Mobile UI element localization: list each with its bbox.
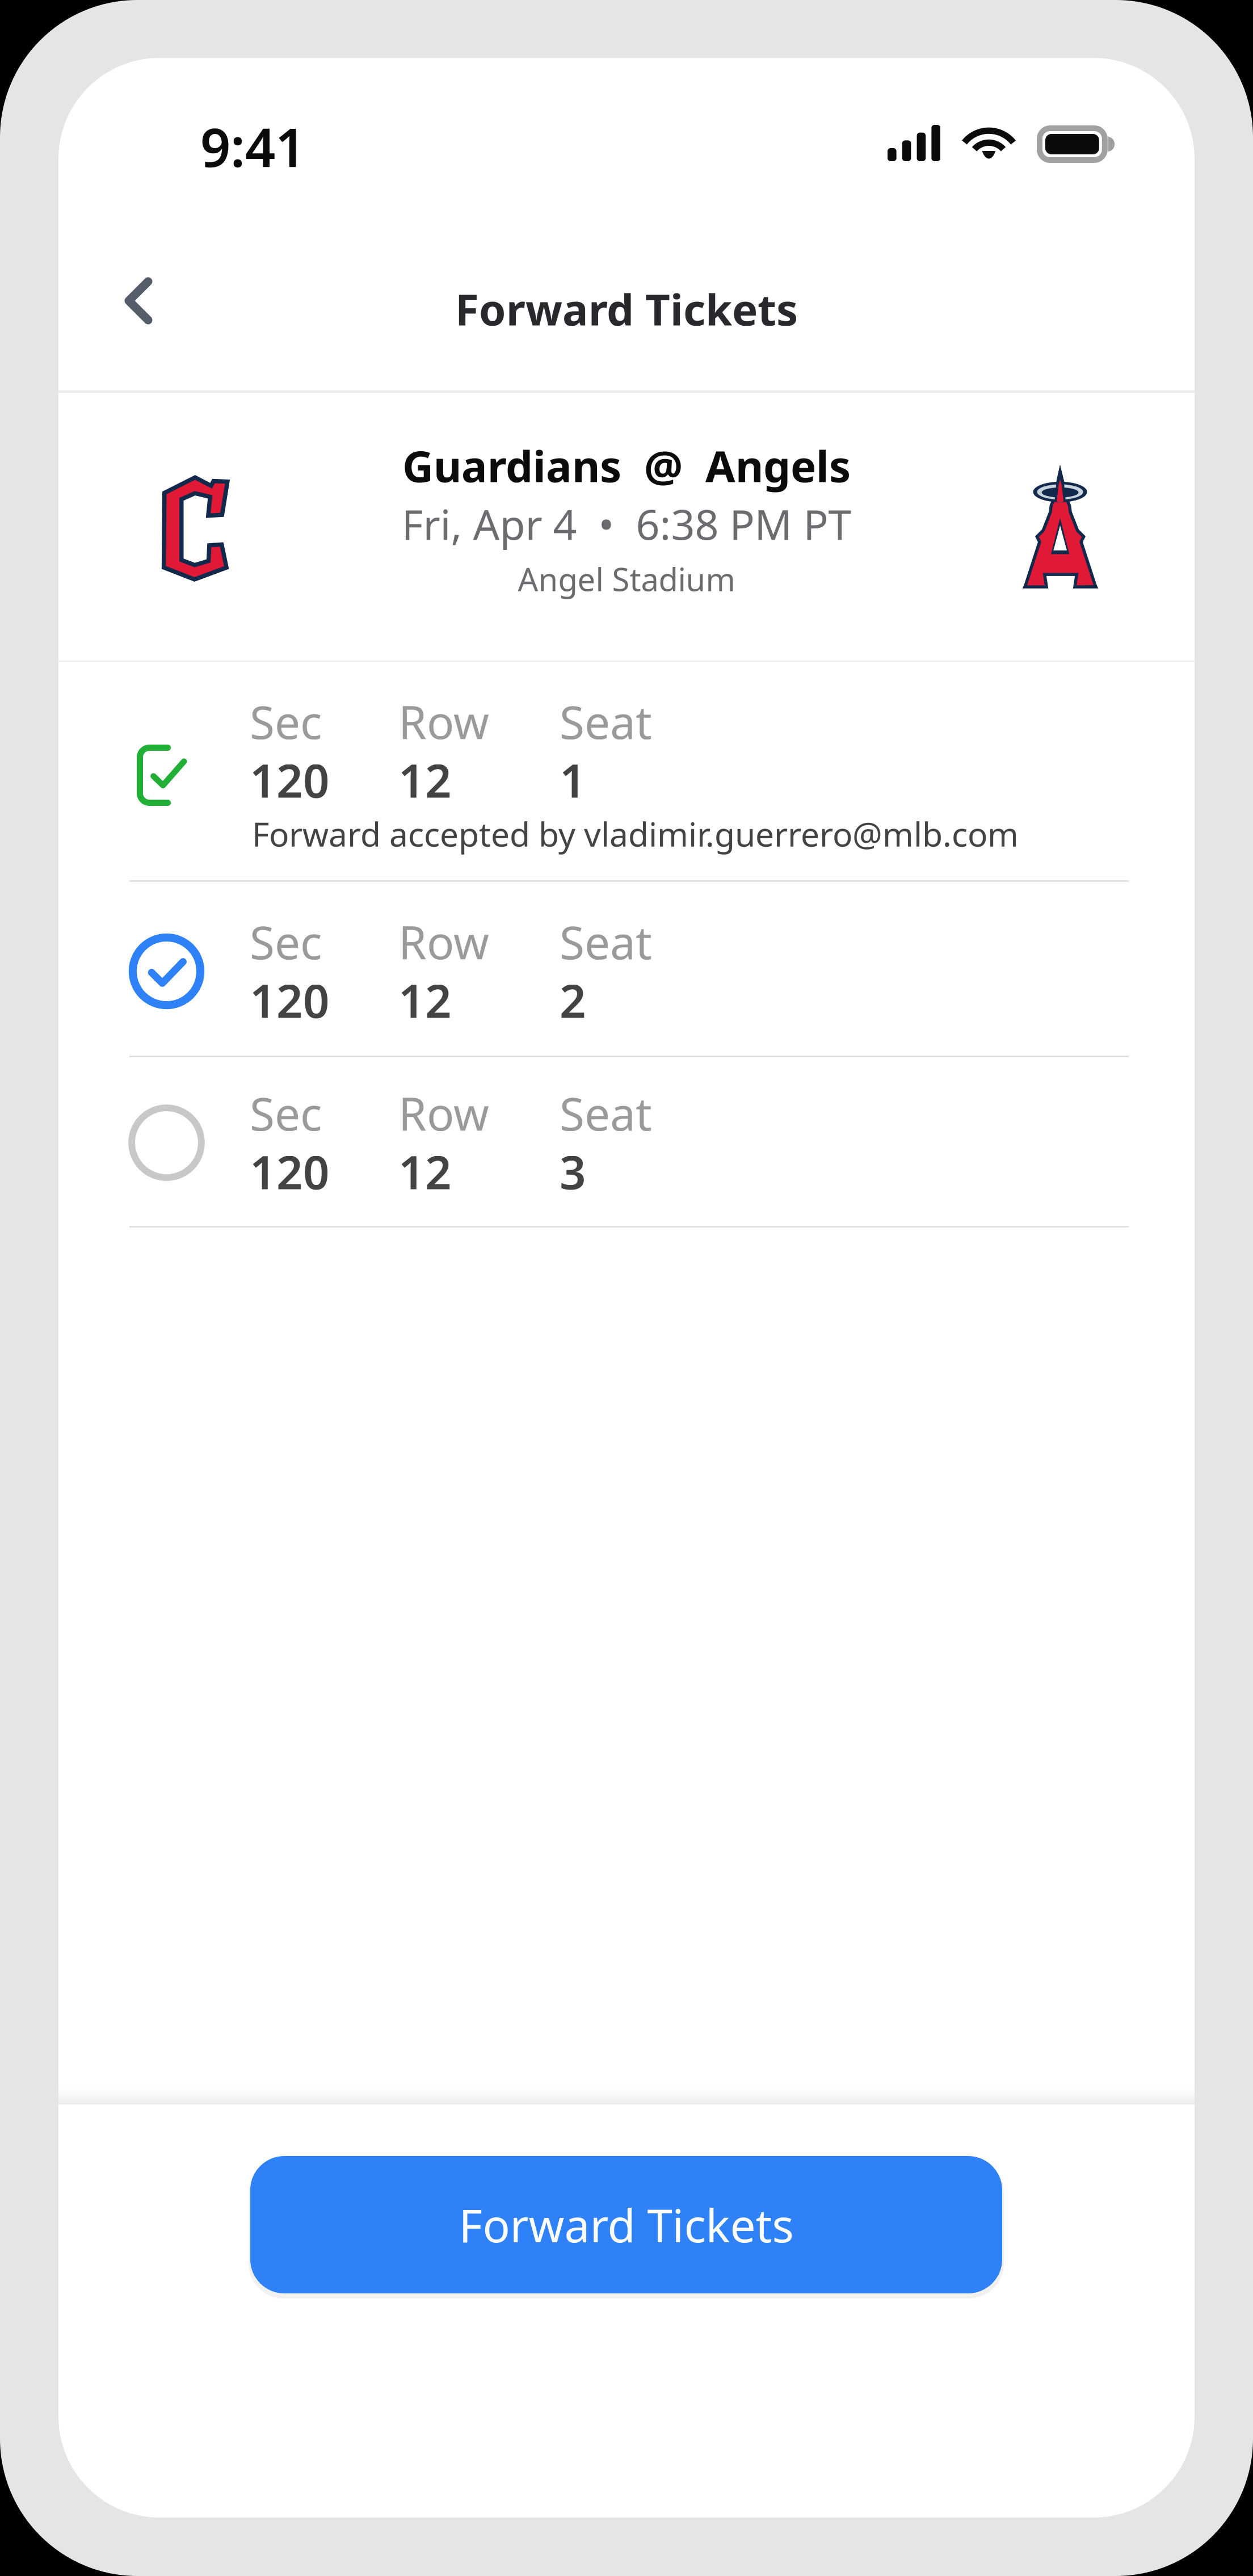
staticText: Seat	[560, 691, 652, 752]
staticText: Seat	[560, 1083, 652, 1143]
staticText: 1	[560, 749, 586, 810]
staticText: Row	[398, 691, 489, 752]
staticText: Sec	[250, 1083, 322, 1143]
button[interactable]: Forward Tickets	[250, 2156, 1002, 2293]
staticText: Forward Tickets	[455, 280, 798, 337]
button[interactable]: Back	[98, 251, 178, 353]
staticText: Sec	[250, 911, 322, 972]
staticText: 120	[250, 749, 330, 810]
button[interactable]	[58, 662, 1195, 881]
staticText: 12	[398, 969, 452, 1031]
staticText: Row	[398, 911, 489, 972]
staticText: 120	[250, 969, 330, 1031]
staticText: 12	[398, 1141, 452, 1202]
staticText: Forward accepted by vladimir.guerrero@ml…	[252, 812, 1019, 856]
staticText: 3	[560, 1141, 586, 1202]
staticText: Forward Tickets	[459, 2195, 794, 2255]
staticText: Guardians @ Angels	[402, 437, 851, 494]
staticText: Fri, Apr 4 • 6:38 PM PT	[401, 496, 852, 551]
staticText: 9:41	[200, 111, 305, 182]
staticText: Seat	[560, 911, 652, 972]
staticText: 12	[398, 749, 452, 810]
staticText: Sec	[250, 691, 322, 752]
staticText: Angel Stadium	[518, 558, 735, 600]
button[interactable]	[58, 1057, 1195, 1226]
staticText: Row	[398, 1083, 489, 1143]
button[interactable]	[58, 882, 1195, 1056]
staticText: 2	[560, 969, 586, 1031]
staticText: 120	[250, 1141, 330, 1202]
